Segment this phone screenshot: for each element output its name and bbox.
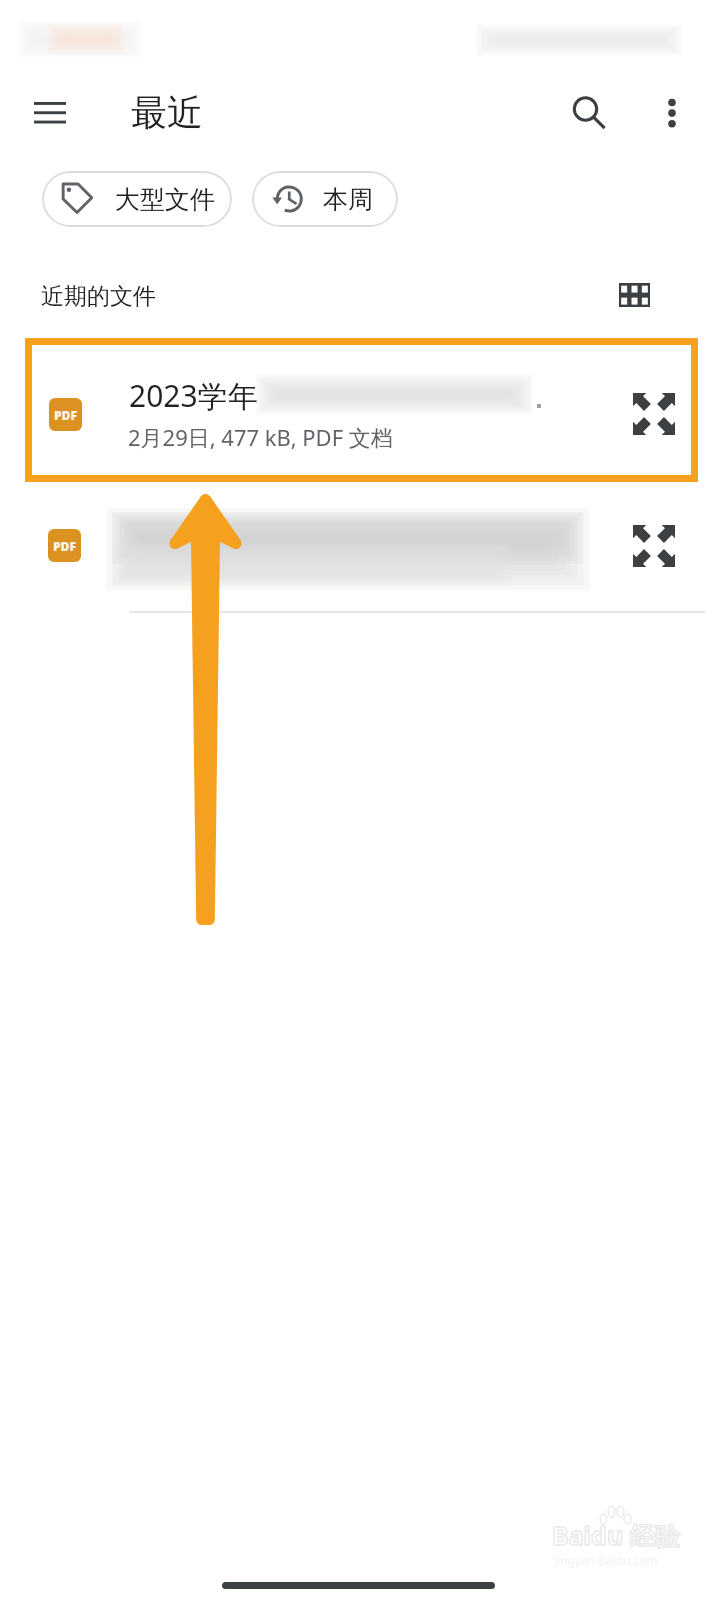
button[interactable]: 本周: [252, 171, 398, 227]
button[interactable]: More options: [644, 83, 700, 139]
button[interactable]: [0, 490, 719, 610]
button[interactable]: Expand: [624, 516, 684, 576]
staticText: 本周: [323, 184, 373, 215]
staticText: jingyan.baidu.com: [554, 1552, 658, 1568]
staticText: PDF: [54, 407, 77, 423]
staticText: 大型文件: [115, 184, 215, 215]
button[interactable]: Expand: [624, 384, 684, 444]
staticText: 近期的文件: [41, 282, 156, 311]
staticText: 最近: [131, 90, 203, 135]
button[interactable]: Search: [559, 83, 619, 143]
button[interactable]: Navigation menu: [14, 83, 86, 143]
button[interactable]: [25, 338, 698, 482]
staticText: PDF: [53, 538, 76, 554]
button[interactable]: 大型文件: [42, 171, 232, 227]
staticText: 2023学年: [129, 375, 258, 416]
button[interactable]: Grid view: [610, 271, 658, 319]
staticText: 2月29日, 477 kB, PDF 文档: [128, 422, 393, 452]
staticText: Baidu 经验: [552, 1518, 680, 1552]
